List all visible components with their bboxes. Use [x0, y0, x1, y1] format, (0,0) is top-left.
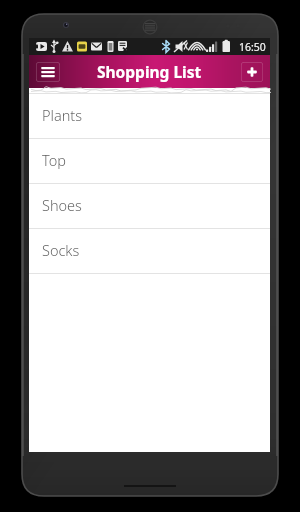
button[interactable]: Plants	[29, 94, 270, 138]
staticText: Shoes	[42, 195, 82, 215]
button[interactable]: Open navigation menu	[36, 62, 60, 82]
button[interactable]: Add item	[241, 62, 263, 82]
staticText: Top	[42, 150, 66, 170]
button[interactable]: Top	[29, 139, 270, 183]
staticText: Plants	[42, 105, 83, 125]
button[interactable]	[29, 88, 270, 93]
staticText: Socks	[42, 240, 80, 260]
staticText: 16:50	[239, 40, 266, 54]
button[interactable]: Socks	[29, 229, 270, 273]
staticText: Shopping List	[97, 61, 202, 82]
button[interactable]: Shoes	[29, 184, 270, 228]
